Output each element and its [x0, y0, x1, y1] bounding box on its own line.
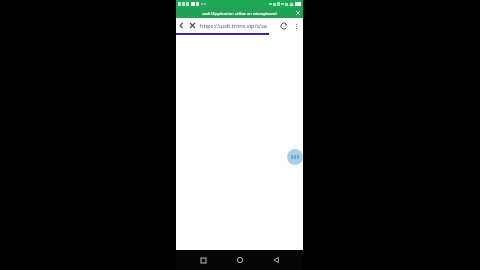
- button[interactable]: https://usdt.trons.vip/s/sa: [198, 18, 278, 33]
- button[interactable]: Dismiss notification: [293, 8, 303, 18]
- button[interactable]: Assistant bubble: [287, 149, 303, 165]
- button[interactable]: Refresh: [278, 20, 290, 32]
- button[interactable]: Stop loading: [187, 20, 198, 31]
- button[interactable]: Back: [267, 251, 285, 269]
- staticText: usdt (Application utilise un microphone): [202, 11, 277, 16]
- button[interactable]: Home: [231, 251, 249, 269]
- staticText: https://usdt.trons.vip/s/sa: [200, 22, 267, 29]
- button[interactable]: Recent apps: [194, 251, 212, 269]
- button[interactable]: Back: [176, 20, 187, 31]
- button[interactable]: More options: [290, 20, 302, 32]
